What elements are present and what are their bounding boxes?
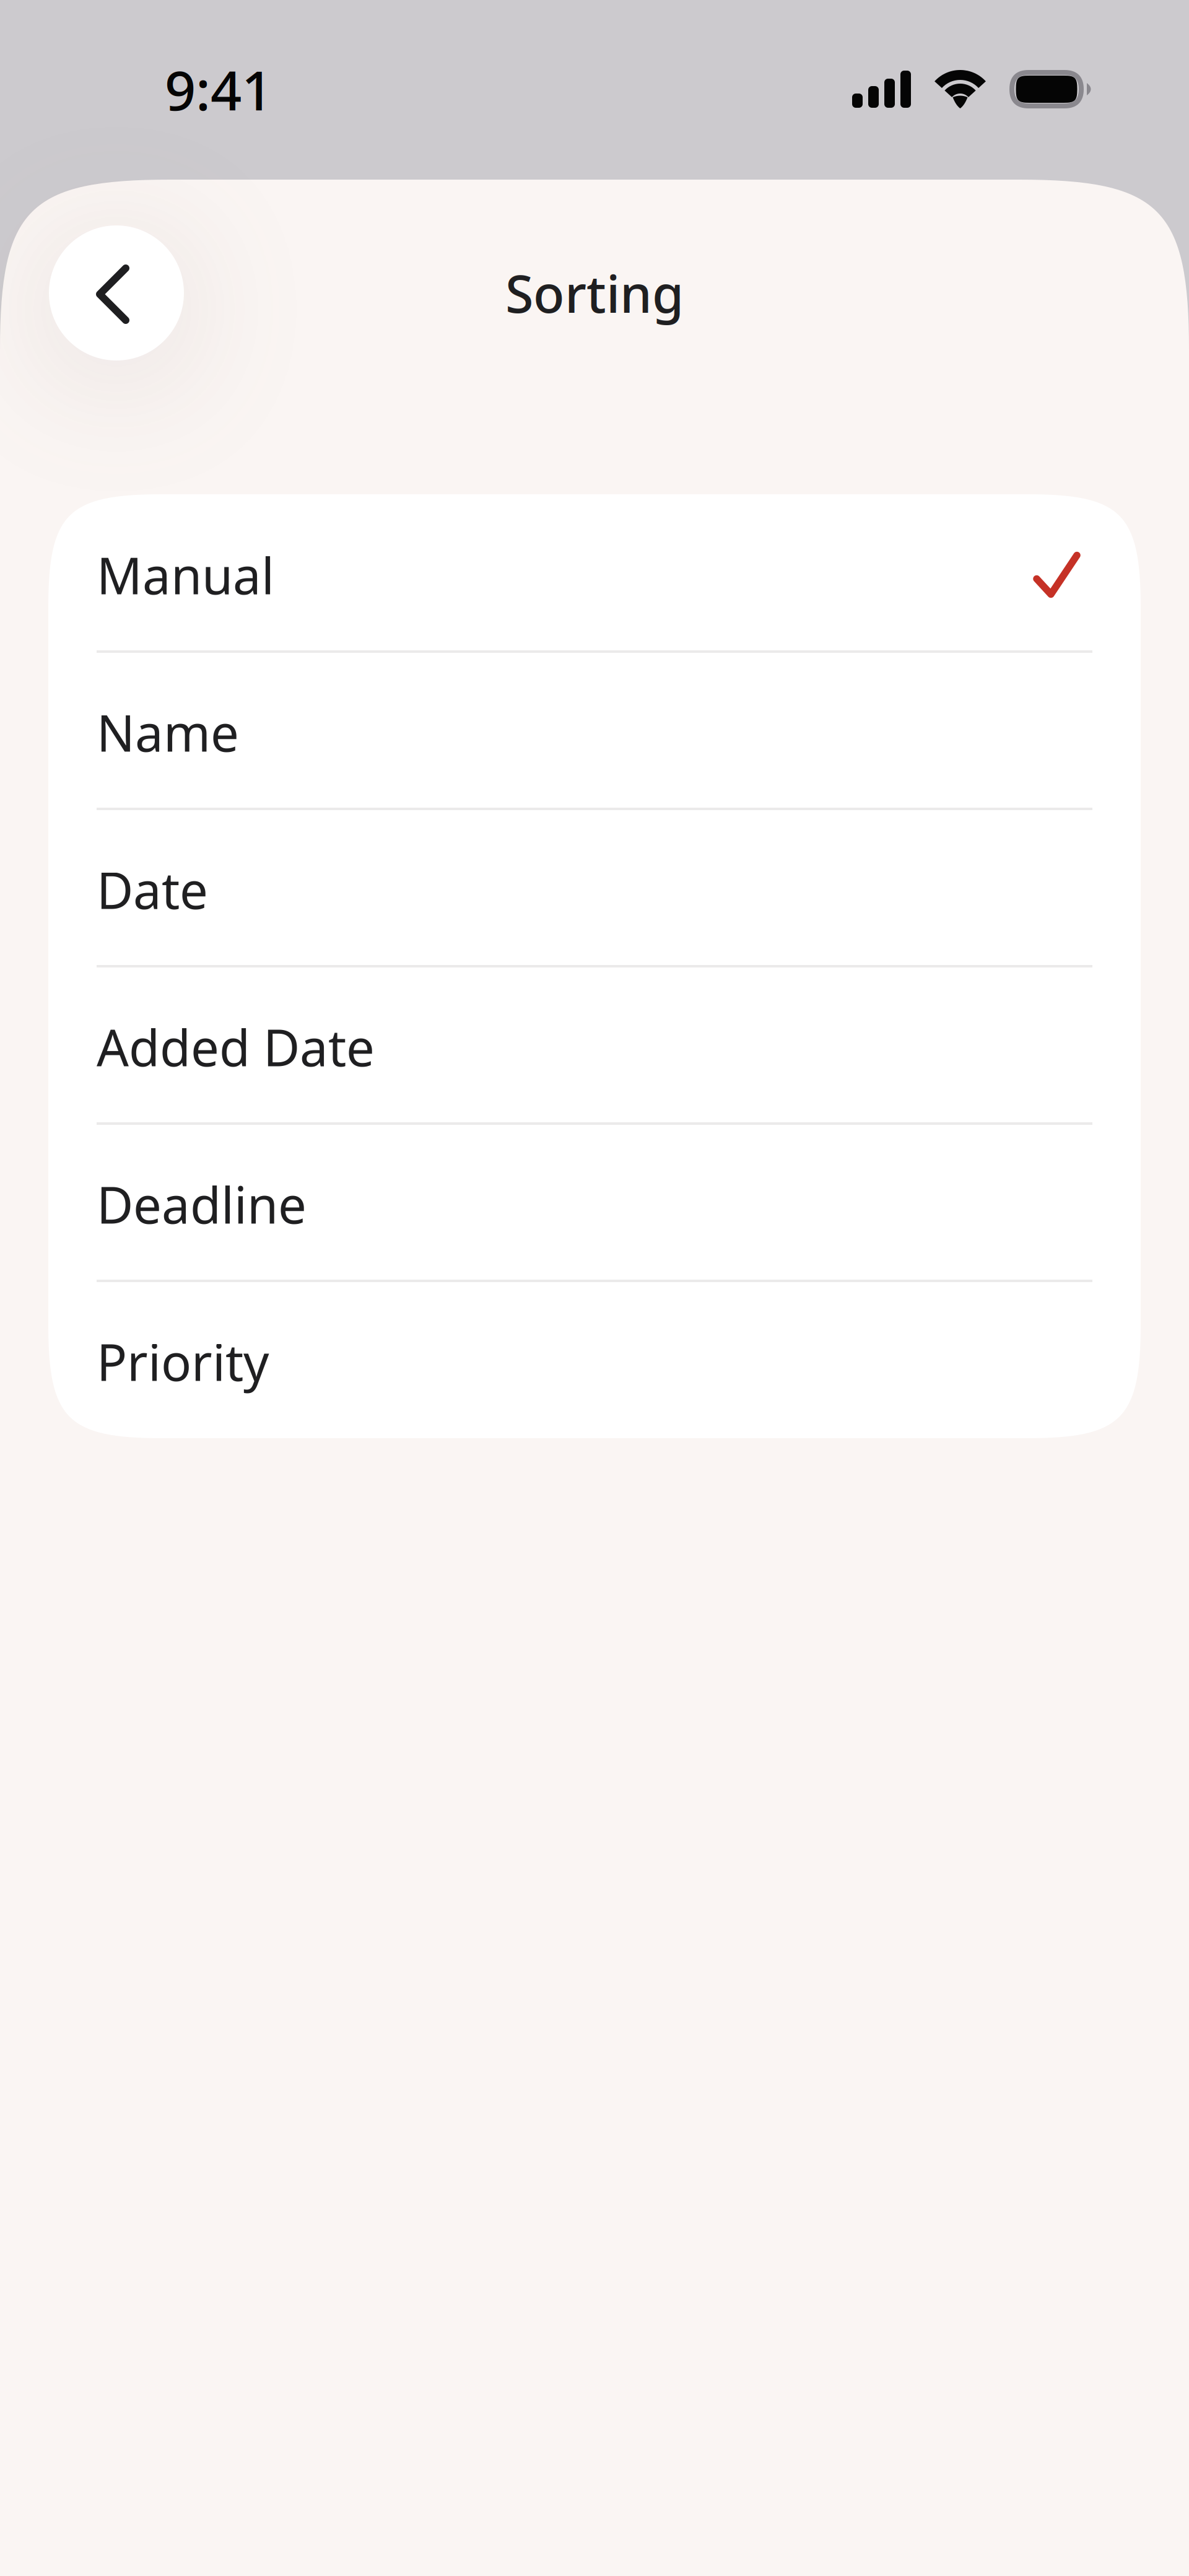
button[interactable]: Manual: [48, 494, 1141, 652]
button[interactable]: Name: [48, 652, 1141, 809]
button[interactable]: Priority: [48, 1281, 1141, 1438]
staticText: Deadline: [97, 1171, 307, 1238]
staticText: Priority: [97, 1328, 269, 1395]
button[interactable]: Added Date: [48, 966, 1141, 1124]
button[interactable]: Deadline: [48, 1124, 1141, 1281]
staticText: Sorting: [505, 259, 684, 327]
staticText: Added Date: [97, 1013, 375, 1080]
button[interactable]: Back: [49, 225, 184, 360]
staticText: Date: [97, 856, 208, 923]
staticText: Manual: [97, 541, 274, 608]
button[interactable]: Date: [48, 809, 1141, 966]
staticText: Name: [97, 699, 239, 766]
staticText: 9:41: [165, 53, 272, 125]
